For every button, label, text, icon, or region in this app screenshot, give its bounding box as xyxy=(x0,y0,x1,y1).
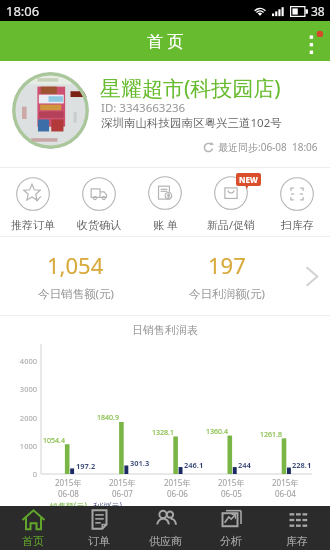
staticText: 今日销售额(元) xyxy=(38,286,114,302)
staticText: 1261.8 xyxy=(259,430,282,440)
button[interactable]: More details xyxy=(302,237,321,315)
staticText: NEW xyxy=(239,174,258,185)
staticText: 分析 xyxy=(220,534,242,548)
staticText: 深圳南山科技园南区粤兴三道102号 xyxy=(101,115,282,131)
staticText: 06-07 xyxy=(112,488,133,499)
staticText: 首页 xyxy=(22,534,44,548)
staticText: 日销售利润表 xyxy=(0,323,330,337)
staticText: 2000 xyxy=(0,413,37,423)
staticText: 扫库存 xyxy=(281,218,314,232)
staticText: 供应商 xyxy=(149,534,182,548)
staticText: 1000 xyxy=(0,441,37,451)
button[interactable]: 分析 xyxy=(198,506,264,550)
staticText: 301.3 xyxy=(130,458,150,468)
staticText: 库存 xyxy=(286,534,308,548)
staticText: 1054.4 xyxy=(42,436,65,446)
staticText: 订单 xyxy=(88,534,110,548)
button[interactable]: 账 单 xyxy=(132,168,198,236)
button[interactable]: NEW xyxy=(198,168,264,236)
staticText: 06-06 xyxy=(167,488,188,499)
staticText: 最近同步:06-08 18:06 xyxy=(218,140,318,154)
staticText: ID: 3343663236 xyxy=(101,100,186,116)
staticText: 246.1 xyxy=(184,460,204,470)
button[interactable]: More options xyxy=(296,21,330,61)
staticText: 2015年 xyxy=(55,477,82,488)
staticText: 推荐订单 xyxy=(11,218,55,232)
button[interactable]: 星耀超市(科技园店) xyxy=(0,61,330,167)
button[interactable]: 库存 xyxy=(264,506,330,550)
staticText: 0 xyxy=(0,469,37,479)
button[interactable]: 1,054 xyxy=(0,237,151,315)
staticText: 2015年 xyxy=(109,477,136,488)
staticText: 06-04 xyxy=(275,488,296,499)
staticText: 197.2 xyxy=(76,461,96,471)
staticText: 4000 xyxy=(0,356,37,366)
staticText: 244 xyxy=(238,460,251,470)
staticText: 1,054 xyxy=(47,250,104,280)
staticText: 销售额(元) xyxy=(50,500,87,511)
button[interactable]: 首页 xyxy=(0,506,66,550)
staticText: 星耀超市(科技园店) xyxy=(100,74,281,103)
staticText: 228.1 xyxy=(292,460,312,470)
button[interactable]: 收货确认 xyxy=(66,168,132,236)
staticText: 06-08 xyxy=(58,488,79,499)
staticText: 首 页 xyxy=(147,30,184,52)
staticText: 38 xyxy=(311,3,325,19)
button[interactable]: 推荐订单 xyxy=(0,168,66,236)
button[interactable]: 供应商 xyxy=(132,506,198,550)
button[interactable]: 扫库存 xyxy=(264,168,330,236)
staticText: 3000 xyxy=(0,384,37,394)
staticText: 1840.9 xyxy=(96,413,119,423)
staticText: 今日利润额(元) xyxy=(189,286,265,302)
button[interactable]: 197 xyxy=(151,237,302,315)
staticText: 1360.4 xyxy=(205,427,228,437)
staticText: 06-05 xyxy=(221,488,242,499)
staticText: 账 单 xyxy=(153,217,178,232)
button[interactable]: 订单 xyxy=(66,506,132,550)
staticText: 18:06 xyxy=(6,2,40,20)
staticText: 2015年 xyxy=(164,477,191,488)
staticText: 2015年 xyxy=(218,477,245,488)
staticText: 2015年 xyxy=(272,477,299,488)
staticText: 1328.1 xyxy=(151,428,174,438)
staticText: 新品/促销 xyxy=(207,217,256,232)
staticText: 197 xyxy=(208,250,246,280)
staticText: 收货确认 xyxy=(77,218,121,232)
staticText: 利润(元) xyxy=(93,500,122,511)
